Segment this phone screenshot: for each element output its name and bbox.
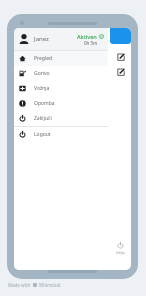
staticText: Zaključi	[34, 115, 52, 122]
staticText: Gorivo	[34, 70, 50, 77]
staticText: Logout	[34, 131, 51, 138]
staticText: Aktiven	[77, 33, 97, 40]
button[interactable]: Opomba	[14, 96, 108, 111]
staticText: Opomba	[34, 100, 55, 107]
button[interactable]: Logout	[14, 127, 108, 142]
button[interactable]: Janez	[14, 28, 108, 50]
staticText: Made with	[8, 282, 31, 288]
staticText: 0h 5m	[84, 40, 98, 46]
button[interactable]: Izklopi	[110, 242, 131, 255]
button[interactable]: Vožnja	[14, 81, 108, 96]
staticText: Whimsical	[39, 282, 61, 288]
button[interactable]: Card	[110, 28, 131, 44]
button[interactable]: Pregled	[14, 51, 108, 66]
button[interactable]: Edit	[110, 50, 131, 64]
staticText: Izklju	[116, 250, 125, 255]
staticText: Janez	[34, 35, 49, 43]
staticText: Vožnja	[34, 85, 50, 92]
staticText: Pregled	[34, 55, 53, 62]
button[interactable]: Edit	[110, 65, 131, 79]
button[interactable]: Zaključi	[14, 111, 108, 126]
button[interactable]: Gorivo	[14, 66, 108, 81]
